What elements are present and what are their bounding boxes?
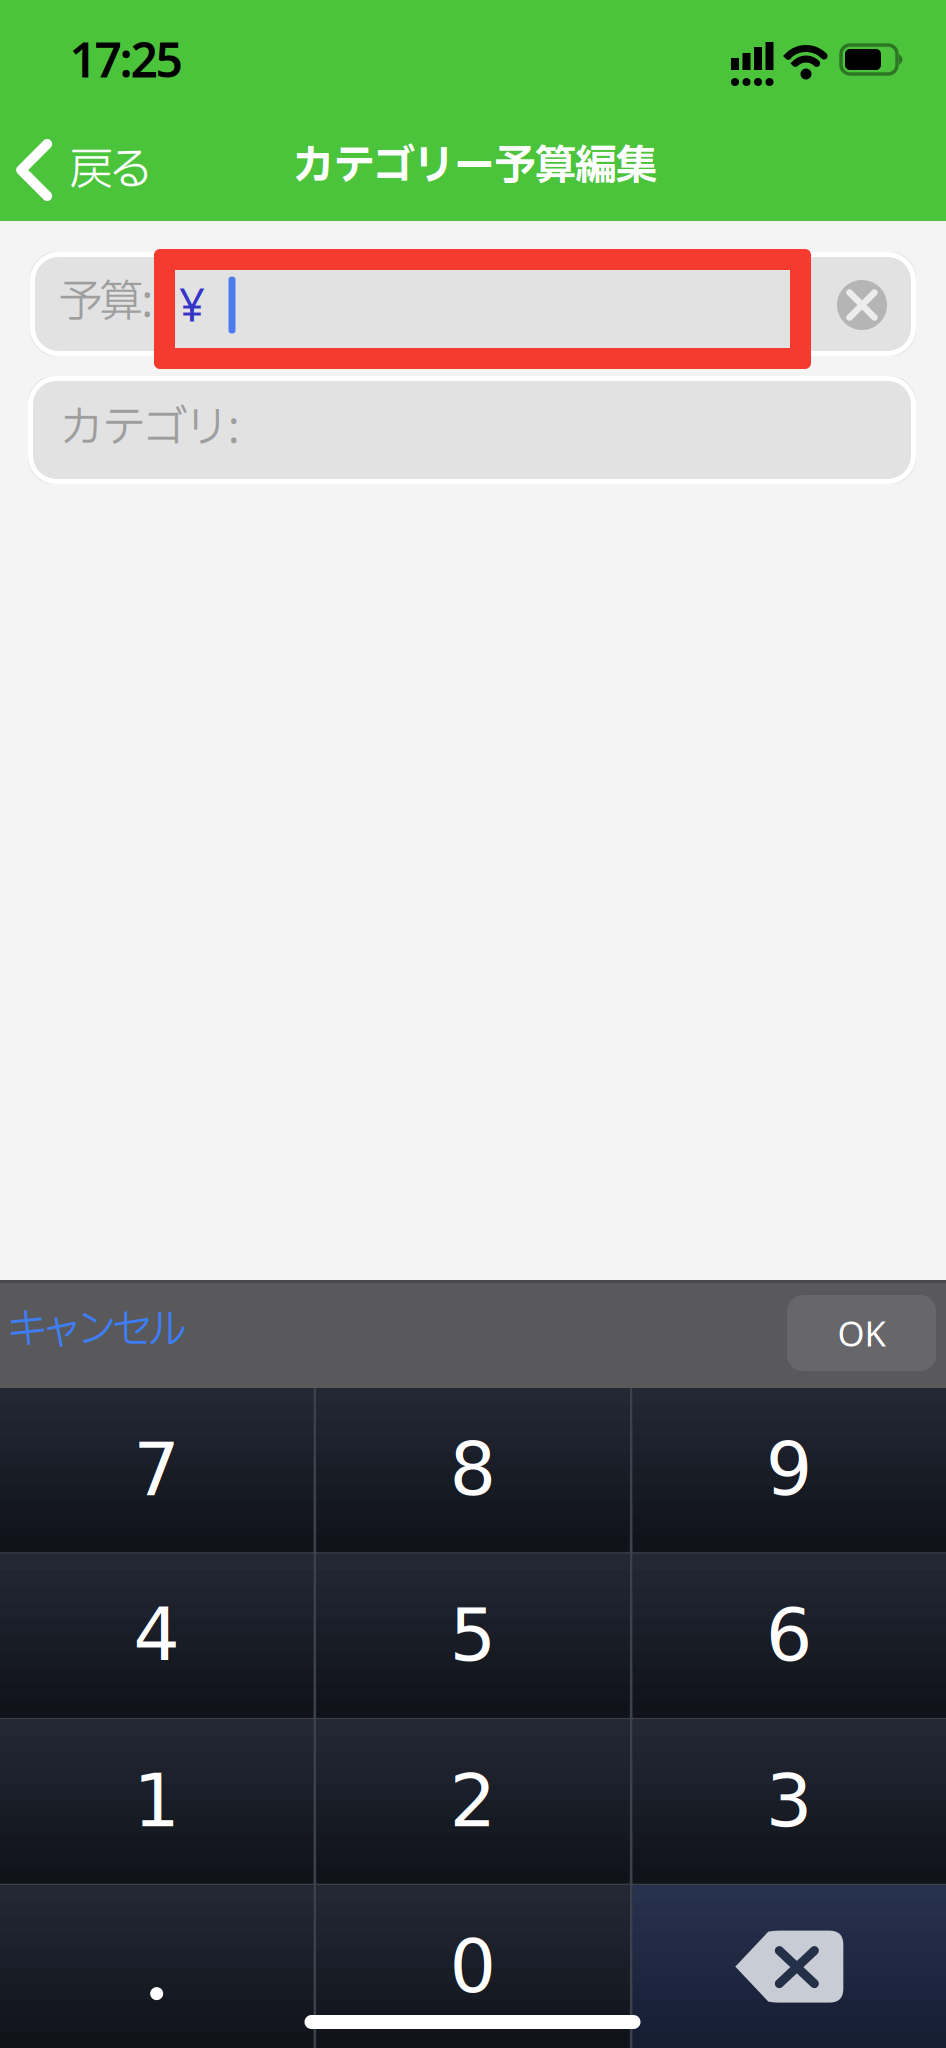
button[interactable]: 6 [633,1554,946,1717]
staticText: 9 [766,1427,813,1512]
staticText: ¥ [179,274,205,334]
button[interactable]: Delete [633,1885,946,2048]
staticText: 7 [133,1427,180,1512]
staticText: 5 [449,1592,496,1678]
staticText: カテゴリー予算編集 [292,135,657,198]
button[interactable]: 4 [0,1554,313,1717]
button[interactable]: 3 [633,1719,946,1882]
button[interactable]: Clear text [837,280,887,330]
staticText: キャンセル [6,1300,187,1362]
staticText: 4 [133,1592,180,1678]
staticText: 2 [449,1758,496,1844]
button[interactable]: キャンセル [6,1300,187,1362]
button[interactable]: 7 [0,1388,313,1551]
staticText: 17:25 [69,27,182,91]
button[interactable]: 8 [316,1388,630,1551]
staticText: 1 [133,1758,180,1844]
staticText: 予算: [58,270,153,336]
staticText: 8 [449,1427,496,1512]
button[interactable]: 0 [316,1885,630,2048]
button[interactable]: 9 [633,1388,946,1551]
staticText: 戻る [69,138,153,204]
button[interactable]: OK [787,1295,936,1371]
button[interactable]: 5 [316,1554,630,1717]
button[interactable]: 2 [316,1719,630,1882]
staticText: 0 [449,1924,496,2009]
button[interactable]: 1 [0,1719,313,1882]
staticText: カテゴリ: [60,396,240,462]
staticText: OK [837,1310,885,1356]
button[interactable]: Decimal point [0,1885,313,2048]
staticText: 6 [766,1592,813,1678]
button[interactable]: 戻る [19,138,153,204]
staticText: 3 [766,1758,813,1844]
